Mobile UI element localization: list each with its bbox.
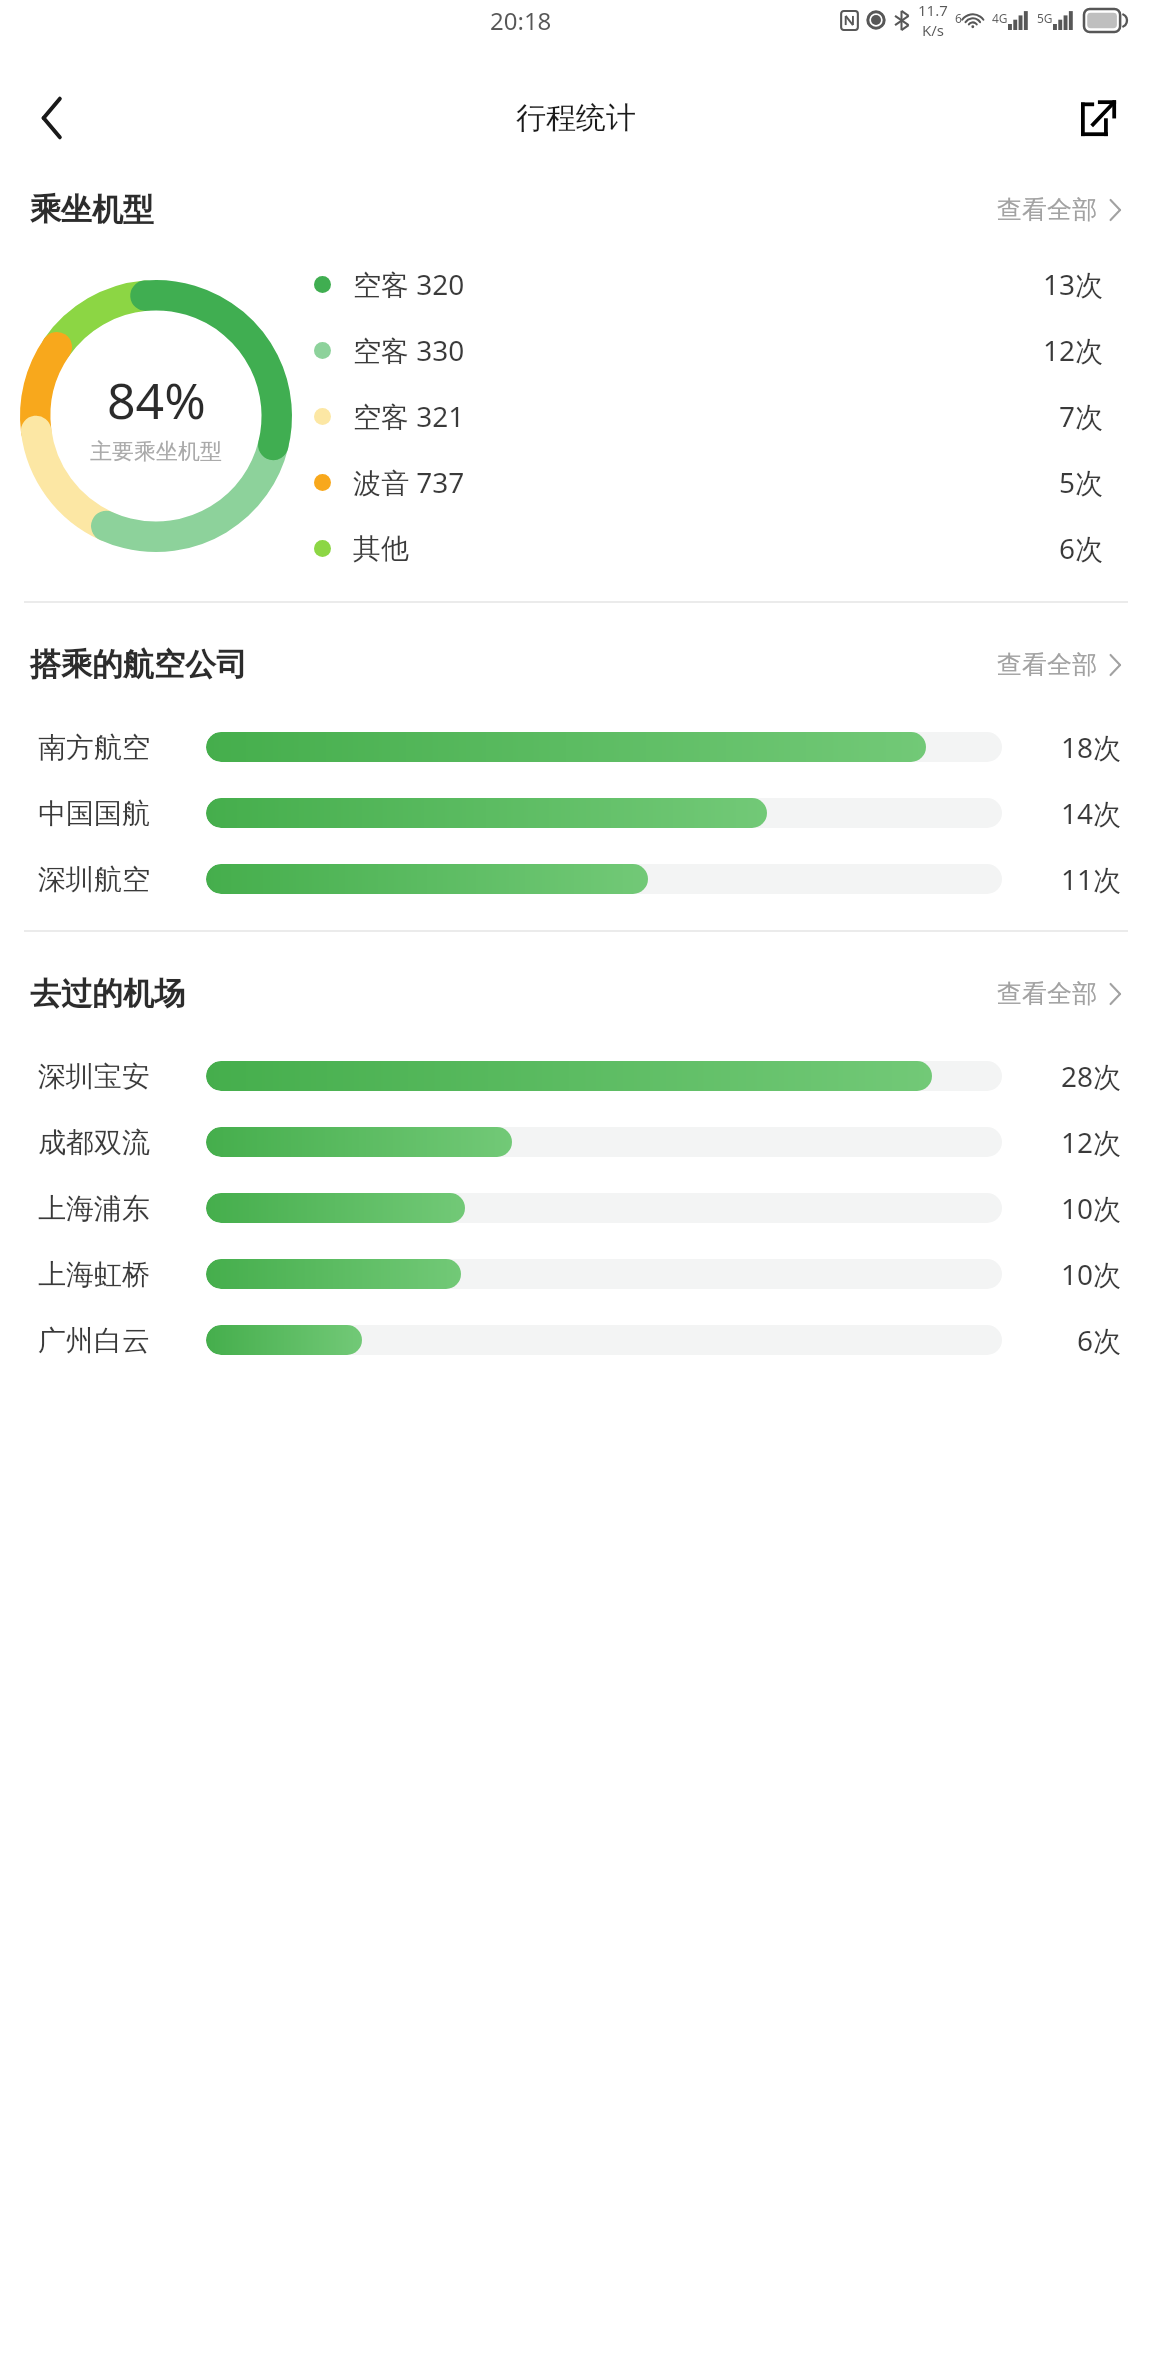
staticText: 12次: [1061, 1123, 1122, 1161]
staticText: 中国国航: [38, 796, 150, 831]
staticText: 13次: [1043, 265, 1104, 303]
staticText: 查看全部: [997, 978, 1097, 1009]
staticText: 5G: [1037, 10, 1053, 26]
staticText: 28次: [1061, 1057, 1122, 1095]
button[interactable]: 广州白云: [0, 1307, 1152, 1373]
staticText: 12次: [1043, 331, 1104, 369]
staticText: 84%: [107, 366, 206, 434]
staticText: 6次: [1077, 1321, 1122, 1359]
button[interactable]: 深圳宝安: [0, 1043, 1152, 1109]
staticText: 深圳航空: [38, 862, 150, 897]
staticText: 5次: [1059, 463, 1104, 501]
button[interactable]: 中国国航: [0, 780, 1152, 846]
button[interactable]: 查看全部: [993, 968, 1126, 1019]
staticText: K/s: [922, 20, 945, 40]
staticText: 空客 330: [353, 331, 465, 369]
button[interactable]: 查看全部: [993, 639, 1126, 690]
staticText: 6: [955, 10, 962, 26]
staticText: 波音 737: [353, 463, 465, 501]
staticText: 查看全部: [997, 649, 1097, 680]
staticText: 18次: [1061, 728, 1122, 766]
staticText: 上海虹桥: [38, 1257, 150, 1292]
staticText: 搭乘的航空公司: [30, 645, 247, 684]
staticText: 主要乘坐机型: [90, 438, 222, 466]
staticText: 行程统计: [516, 99, 636, 137]
staticText: 查看全部: [997, 194, 1097, 225]
staticText: 10次: [1061, 1255, 1122, 1293]
button[interactable]: 南方航空: [0, 714, 1152, 780]
staticText: 6次: [1059, 529, 1104, 567]
button[interactable]: 波音 737: [314, 449, 1128, 515]
button[interactable]: 成都双流: [0, 1109, 1152, 1175]
staticText: 20:18: [490, 4, 552, 37]
staticText: 成都双流: [38, 1125, 150, 1160]
button[interactable]: 上海虹桥: [0, 1241, 1152, 1307]
staticText: 11次: [1061, 860, 1122, 898]
staticText: 14次: [1061, 794, 1122, 832]
staticText: 其他: [353, 531, 409, 566]
staticText: 深圳宝安: [38, 1059, 150, 1094]
button[interactable]: 查看全部: [993, 184, 1126, 235]
button[interactable]: 上海浦东: [0, 1175, 1152, 1241]
button[interactable]: 空客 320: [314, 251, 1128, 317]
staticText: 10次: [1061, 1189, 1122, 1227]
staticText: 11.7: [918, 0, 948, 20]
button[interactable]: Share: [1062, 82, 1134, 154]
staticText: 乘坐机型: [30, 190, 154, 229]
button[interactable]: Back: [16, 82, 88, 154]
staticText: 4G: [992, 10, 1008, 26]
staticText: 空客 321: [353, 397, 465, 435]
staticText: 南方航空: [38, 730, 150, 765]
staticText: 空客 320: [353, 265, 465, 303]
button[interactable]: 空客 321: [314, 383, 1128, 449]
button[interactable]: 深圳航空: [0, 846, 1152, 912]
staticText: 上海浦东: [38, 1191, 150, 1226]
staticText: 广州白云: [38, 1323, 150, 1358]
button[interactable]: 其他: [314, 515, 1128, 581]
staticText: 7次: [1059, 397, 1104, 435]
button[interactable]: 空客 330: [314, 317, 1128, 383]
staticText: 去过的机场: [30, 974, 185, 1013]
